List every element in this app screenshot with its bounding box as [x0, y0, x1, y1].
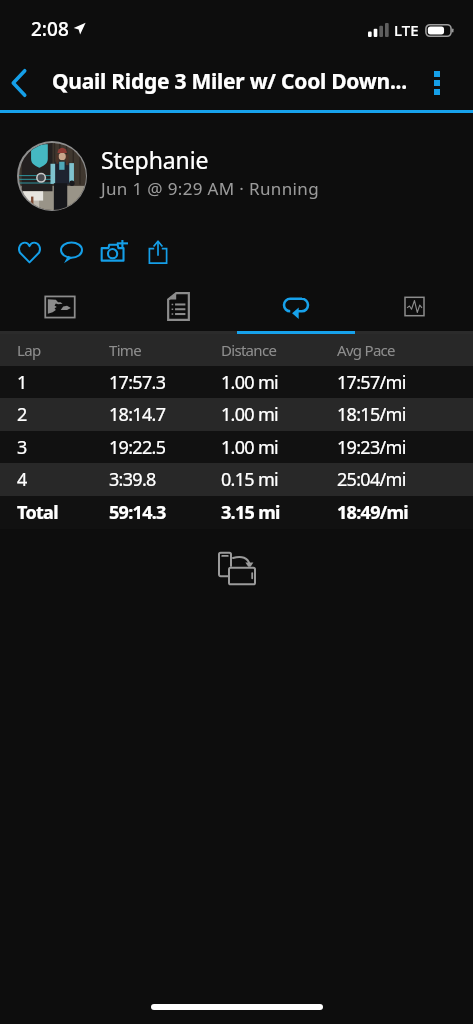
staticText: Jun 1 @ 9:29 AM · Running [101, 177, 319, 200]
staticText: 19:23/mi [337, 435, 406, 460]
staticText: Distance [221, 340, 277, 360]
button[interactable]: Graphs tab [355, 282, 473, 331]
button[interactable]: Stephanie profile photo [17, 141, 87, 211]
button[interactable]: Laps tab [237, 282, 355, 331]
button[interactable]: Share [146, 232, 170, 272]
button[interactable]: 3 [0, 431, 473, 463]
staticText: 17:57/mi [337, 370, 406, 395]
button[interactable]: Comment [58, 232, 84, 272]
button[interactable]: 2 [0, 398, 473, 431]
staticText: Stephanie [101, 144, 209, 175]
button[interactable]: Total [0, 496, 473, 529]
staticText: 18:15/mi [337, 402, 406, 427]
staticText: Avg Pace [337, 340, 395, 360]
button[interactable]: Map tab [0, 282, 119, 331]
staticText: Total [17, 500, 58, 525]
button[interactable]: 1 [0, 366, 473, 398]
button[interactable]: Add photo [99, 232, 129, 272]
staticText: 4 [17, 467, 27, 492]
staticText: LTE [394, 20, 419, 40]
staticText: 1.00 mi [221, 435, 278, 460]
staticText: 17:57.3 [109, 370, 166, 395]
staticText: 0.15 mi [221, 467, 278, 492]
button[interactable]: Back [0, 60, 40, 106]
staticText: 3:39.8 [109, 467, 156, 492]
button[interactable]: 4 [0, 463, 473, 496]
staticText: 3.15 mi [221, 500, 280, 525]
staticText: 1.00 mi [221, 402, 278, 427]
staticText: Time [109, 340, 141, 360]
staticText: 19:22.5 [109, 435, 166, 460]
button[interactable]: Details tab [119, 282, 237, 331]
staticText: 25:04/mi [337, 467, 406, 492]
staticText: 18:49/mi [337, 500, 409, 525]
button[interactable]: More options [417, 63, 457, 103]
button[interactable]: Like [17, 232, 41, 272]
staticText: 1 [17, 370, 27, 395]
button[interactable]: Lap [0, 334, 473, 366]
staticText: 2 [17, 402, 27, 427]
staticText: 59:14.3 [109, 500, 166, 525]
staticText: 3 [17, 435, 27, 460]
staticText: 18:14.7 [109, 402, 166, 427]
staticText: 2:08 [31, 16, 69, 42]
button[interactable]: Rotate device [214, 545, 260, 591]
staticText: Quail Ridge 3 Miler w/ Cool Down... [52, 67, 407, 96]
staticText: 1.00 mi [221, 370, 278, 395]
staticText: Lap [17, 340, 41, 360]
